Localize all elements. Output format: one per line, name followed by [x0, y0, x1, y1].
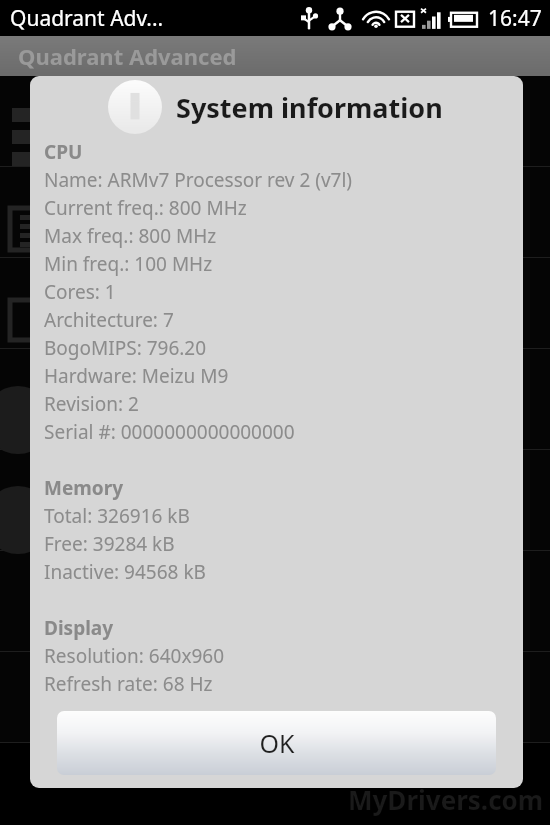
staticText: Memory — [44, 475, 124, 501]
staticText: Architecture: 7 — [44, 307, 174, 333]
staticText: System information — [176, 89, 443, 126]
staticText: Refresh rate: 68 Hz — [44, 671, 213, 697]
staticText: Quadrant Adv... — [10, 4, 164, 33]
staticText: Max freq.: 800 MHz — [44, 223, 217, 249]
staticText: Display — [44, 615, 114, 641]
staticText: Hardware: Meizu M9 — [44, 363, 229, 389]
staticText: Total: 326916 kB — [44, 503, 190, 529]
staticText: Min freq.: 100 MHz — [44, 251, 213, 277]
staticText: Quadrant Advanced — [18, 41, 237, 71]
button[interactable]: OK — [57, 711, 496, 775]
staticText: Free: 39284 kB — [44, 531, 175, 557]
staticText: Inactive: 94568 kB — [44, 559, 206, 585]
staticText: Serial #: 0000000000000000 — [44, 419, 295, 445]
staticText: CPU — [44, 139, 83, 165]
staticText: Cores: 1 — [44, 279, 116, 305]
staticText: Resolution: 640x960 — [44, 643, 225, 669]
staticText: BogoMIPS: 796.20 — [44, 335, 207, 361]
staticText: Name: ARMv7 Processor rev 2 (v7l) — [44, 167, 353, 193]
staticText: Revision: 2 — [44, 391, 139, 417]
staticText: OK — [259, 726, 295, 760]
staticText: Current freq.: 800 MHz — [44, 195, 247, 221]
staticText: 16:47 — [488, 4, 542, 33]
staticText: MyDrivers.com — [348, 782, 544, 817]
